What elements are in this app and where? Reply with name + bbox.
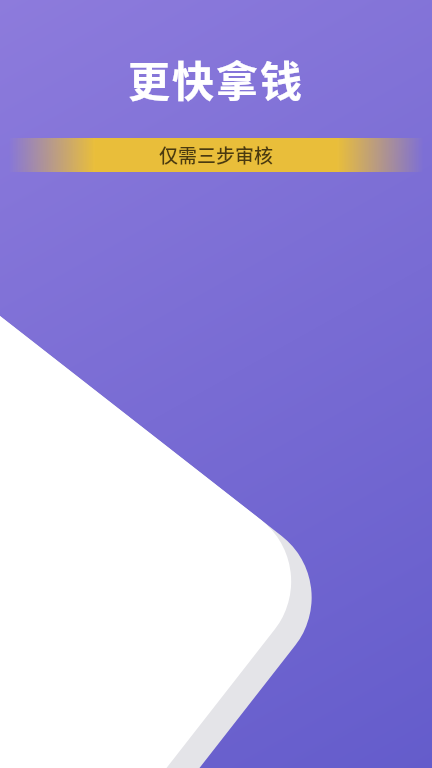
staticText: 更快拿钱 [0, 48, 432, 109]
staticText: 仅需三步审核 [159, 141, 274, 169]
